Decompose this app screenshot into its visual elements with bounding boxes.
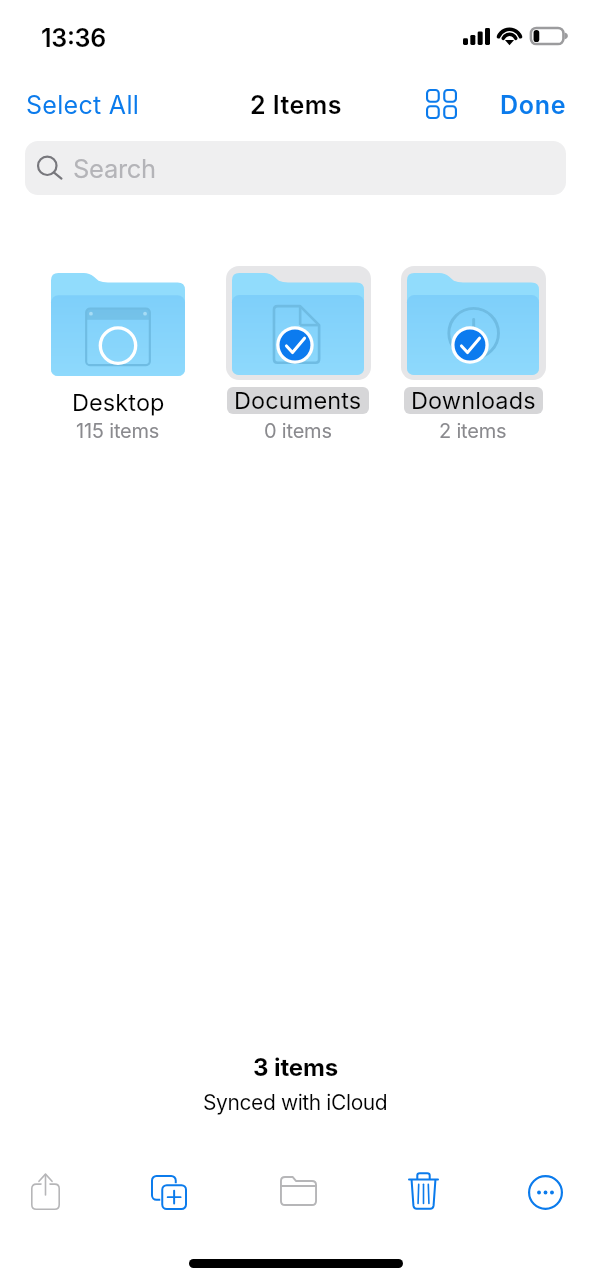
button[interactable]: More — [515, 1162, 575, 1222]
button[interactable]: New Folder — [268, 1161, 328, 1221]
staticText: 2 items — [439, 419, 507, 443]
staticText: Synced with iCloud — [203, 1090, 388, 1115]
staticText: Documents — [234, 387, 362, 413]
button[interactable]: Documents — [210, 258, 386, 448]
button[interactable]: Duplicate — [139, 1162, 199, 1222]
button[interactable]: Share — [15, 1161, 75, 1221]
staticText: 115 items — [76, 419, 160, 443]
staticText: Done — [500, 90, 567, 120]
staticText: Desktop — [72, 388, 165, 416]
button[interactable]: Search — [25, 141, 566, 195]
button[interactable]: Desktop — [30, 258, 206, 448]
staticText: 3 items — [253, 1053, 339, 1082]
staticText: Downloads — [411, 387, 536, 413]
staticText: Search — [73, 153, 156, 184]
button[interactable]: Delete — [393, 1161, 453, 1221]
button[interactable]: Downloads — [385, 258, 561, 448]
staticText: 2 Items — [250, 90, 342, 120]
button[interactable]: Grid view — [418, 81, 464, 127]
staticText: 0 items — [264, 419, 332, 443]
button[interactable]: Select All — [16, 84, 150, 126]
staticText: Select All — [26, 90, 140, 120]
staticText: 13:36 — [41, 23, 106, 53]
button[interactable]: Done — [490, 84, 577, 126]
